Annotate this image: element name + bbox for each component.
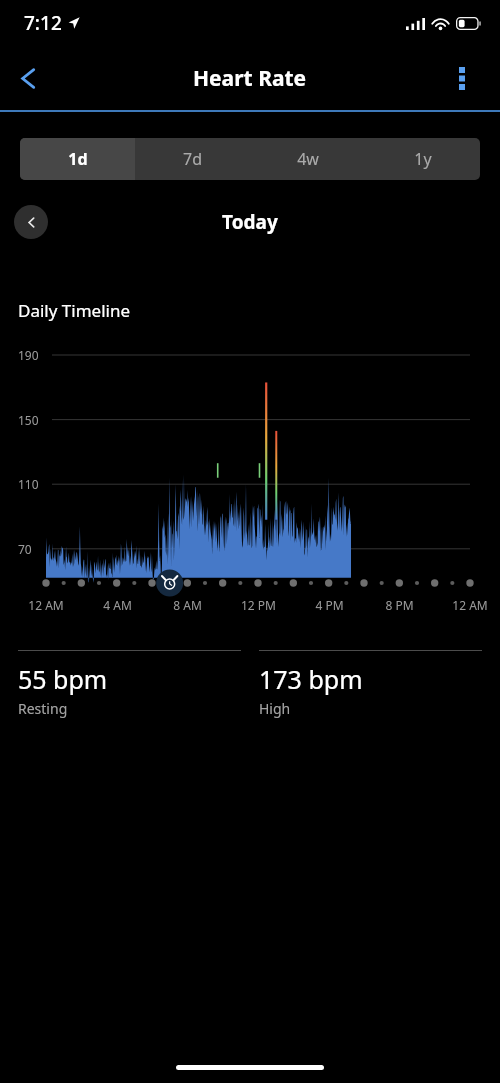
staticText: 8 AM <box>173 597 202 613</box>
staticText: 150 <box>18 412 39 428</box>
staticText: High <box>259 699 291 718</box>
staticText: 4 PM <box>315 597 344 613</box>
button[interactable]: 55 bpm <box>18 650 241 718</box>
staticText: 8 PM <box>385 597 414 613</box>
button[interactable]: 7d <box>135 138 250 180</box>
staticText: Resting <box>18 699 68 718</box>
staticText: 7:12 <box>24 10 62 36</box>
staticText: 12 AM <box>452 597 488 613</box>
staticText: 4 AM <box>103 597 132 613</box>
button[interactable]: Back <box>4 54 52 102</box>
staticText: 12 AM <box>28 597 64 613</box>
button[interactable]: 4w <box>250 138 365 180</box>
staticText: 7d <box>183 148 202 170</box>
staticText: 55 bpm <box>18 662 108 696</box>
button[interactable]: 1d <box>20 138 135 180</box>
staticText: Today <box>222 209 278 235</box>
staticText: 110 <box>18 476 39 492</box>
button[interactable]: More options <box>440 56 484 100</box>
button[interactable]: Previous day <box>14 205 48 239</box>
staticText: 190 <box>18 347 39 363</box>
button[interactable]: 173 bpm <box>259 650 482 718</box>
staticText: 4w <box>297 148 319 170</box>
button[interactable]: 1y <box>365 138 480 180</box>
staticText: 173 bpm <box>259 662 363 696</box>
staticText: 12 PM <box>241 597 276 613</box>
staticText: 1y <box>414 148 432 170</box>
staticText: 70 <box>18 541 32 557</box>
staticText: 1d <box>68 148 88 170</box>
staticText: Heart Rate <box>193 64 307 93</box>
staticText: Daily Timeline <box>18 299 130 322</box>
